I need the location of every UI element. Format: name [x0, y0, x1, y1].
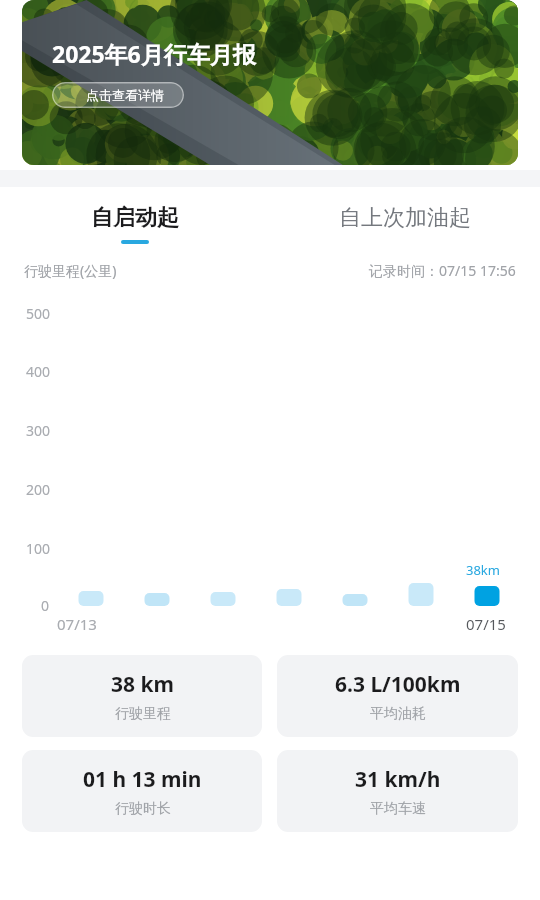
button[interactable]: 01 h 13 min	[22, 750, 262, 832]
staticText: 100	[26, 539, 51, 558]
staticText: 点击查看详情	[86, 87, 164, 103]
staticText: 07/13	[57, 614, 97, 634]
staticText: 300	[26, 421, 51, 440]
staticText: 平均车速	[370, 800, 426, 818]
staticText: 行驶里程	[115, 705, 171, 723]
staticText: 自上次加油起	[339, 204, 471, 232]
staticText: 记录时间：07/15 17:56	[369, 261, 516, 280]
button[interactable]: 38 km	[22, 655, 262, 737]
staticText: 31 km/h	[355, 765, 441, 794]
button[interactable]: 自上次加油起	[270, 187, 540, 261]
staticText: 行驶时长	[115, 800, 171, 818]
staticText: 平均油耗	[370, 705, 426, 723]
button[interactable]: 31 km/h	[277, 750, 518, 832]
staticText: 0	[41, 596, 50, 615]
other: Monthly driving report banner	[22, 0, 518, 165]
button[interactable]: 6.3 L/100km	[277, 655, 518, 737]
staticText: 2025年6月行车月报	[52, 38, 256, 69]
staticText: 400	[26, 362, 51, 381]
staticText: 6.3 L/100km	[335, 670, 461, 699]
button[interactable]: 自启动起	[0, 187, 270, 261]
staticText: 07/15	[466, 614, 506, 634]
staticText: 行驶里程(公里)	[24, 261, 117, 280]
button[interactable]: Monthly driving report banner	[22, 0, 518, 165]
staticText: 38 km	[111, 670, 174, 699]
staticText: 38km	[466, 561, 500, 579]
staticText: 自启动起	[91, 204, 179, 232]
staticText: 200	[26, 480, 51, 499]
staticText: 01 h 13 min	[83, 765, 202, 794]
staticText: 500	[26, 304, 51, 323]
button[interactable]: 点击查看详情	[52, 82, 184, 108]
